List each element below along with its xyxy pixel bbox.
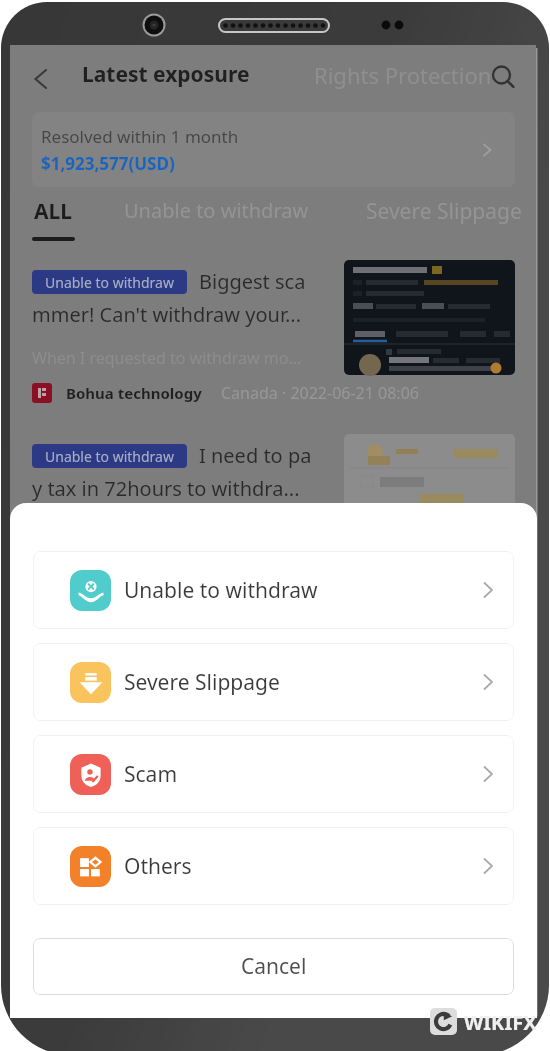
staticText: When I requested to withdraw mo... — [32, 347, 302, 369]
button[interactable]: Severe Slippage — [354, 197, 534, 226]
button[interactable]: Cancel — [33, 938, 514, 995]
staticText: Latest exposure — [82, 60, 250, 89]
staticText: Cancel — [241, 952, 307, 981]
button[interactable]: Others — [33, 827, 514, 905]
button[interactable]: Unable to withdraw — [33, 551, 514, 629]
staticText: Unable to withdraw — [124, 576, 318, 605]
button[interactable]: Back — [23, 59, 63, 99]
button[interactable]: Resolved within 1 month — [32, 112, 515, 187]
staticText: ALL — [34, 197, 73, 226]
staticText: mmer! Can't withdraw your... — [32, 301, 302, 328]
staticText: WIKIFX — [464, 1009, 537, 1036]
button[interactable]: Unable to withdraw — [32, 268, 515, 404]
staticText: Others — [124, 852, 192, 881]
staticText: Unable to withdraw — [45, 273, 174, 292]
staticText: y tax in 72hours to withdra... — [32, 475, 300, 502]
staticText: I need to pa — [199, 442, 312, 469]
button[interactable]: ALL — [32, 197, 75, 241]
staticText: Bohua technology — [66, 383, 202, 403]
button[interactable]: Search — [487, 61, 521, 95]
staticText: Scam — [124, 760, 178, 789]
button[interactable]: Rights Protection — [314, 60, 492, 90]
button[interactable]: Unable to withdraw — [112, 197, 321, 224]
staticText: Severe Slippage — [124, 668, 280, 697]
button[interactable]: Scam — [33, 735, 514, 813]
staticText: Resolved within 1 month — [41, 125, 239, 148]
staticText: Canada · 2022-06-21 08:06 — [221, 382, 419, 404]
staticText: Biggest sca — [199, 268, 306, 295]
staticText: Unable to withdraw — [124, 197, 309, 224]
button[interactable]: Unable to withdraw — [32, 442, 515, 557]
staticText: Unable to withdraw — [45, 447, 174, 466]
staticText: $1,923,577(USD) — [41, 152, 175, 175]
button[interactable]: Severe Slippage — [33, 643, 514, 721]
staticText: Severe Slippage — [366, 197, 522, 226]
